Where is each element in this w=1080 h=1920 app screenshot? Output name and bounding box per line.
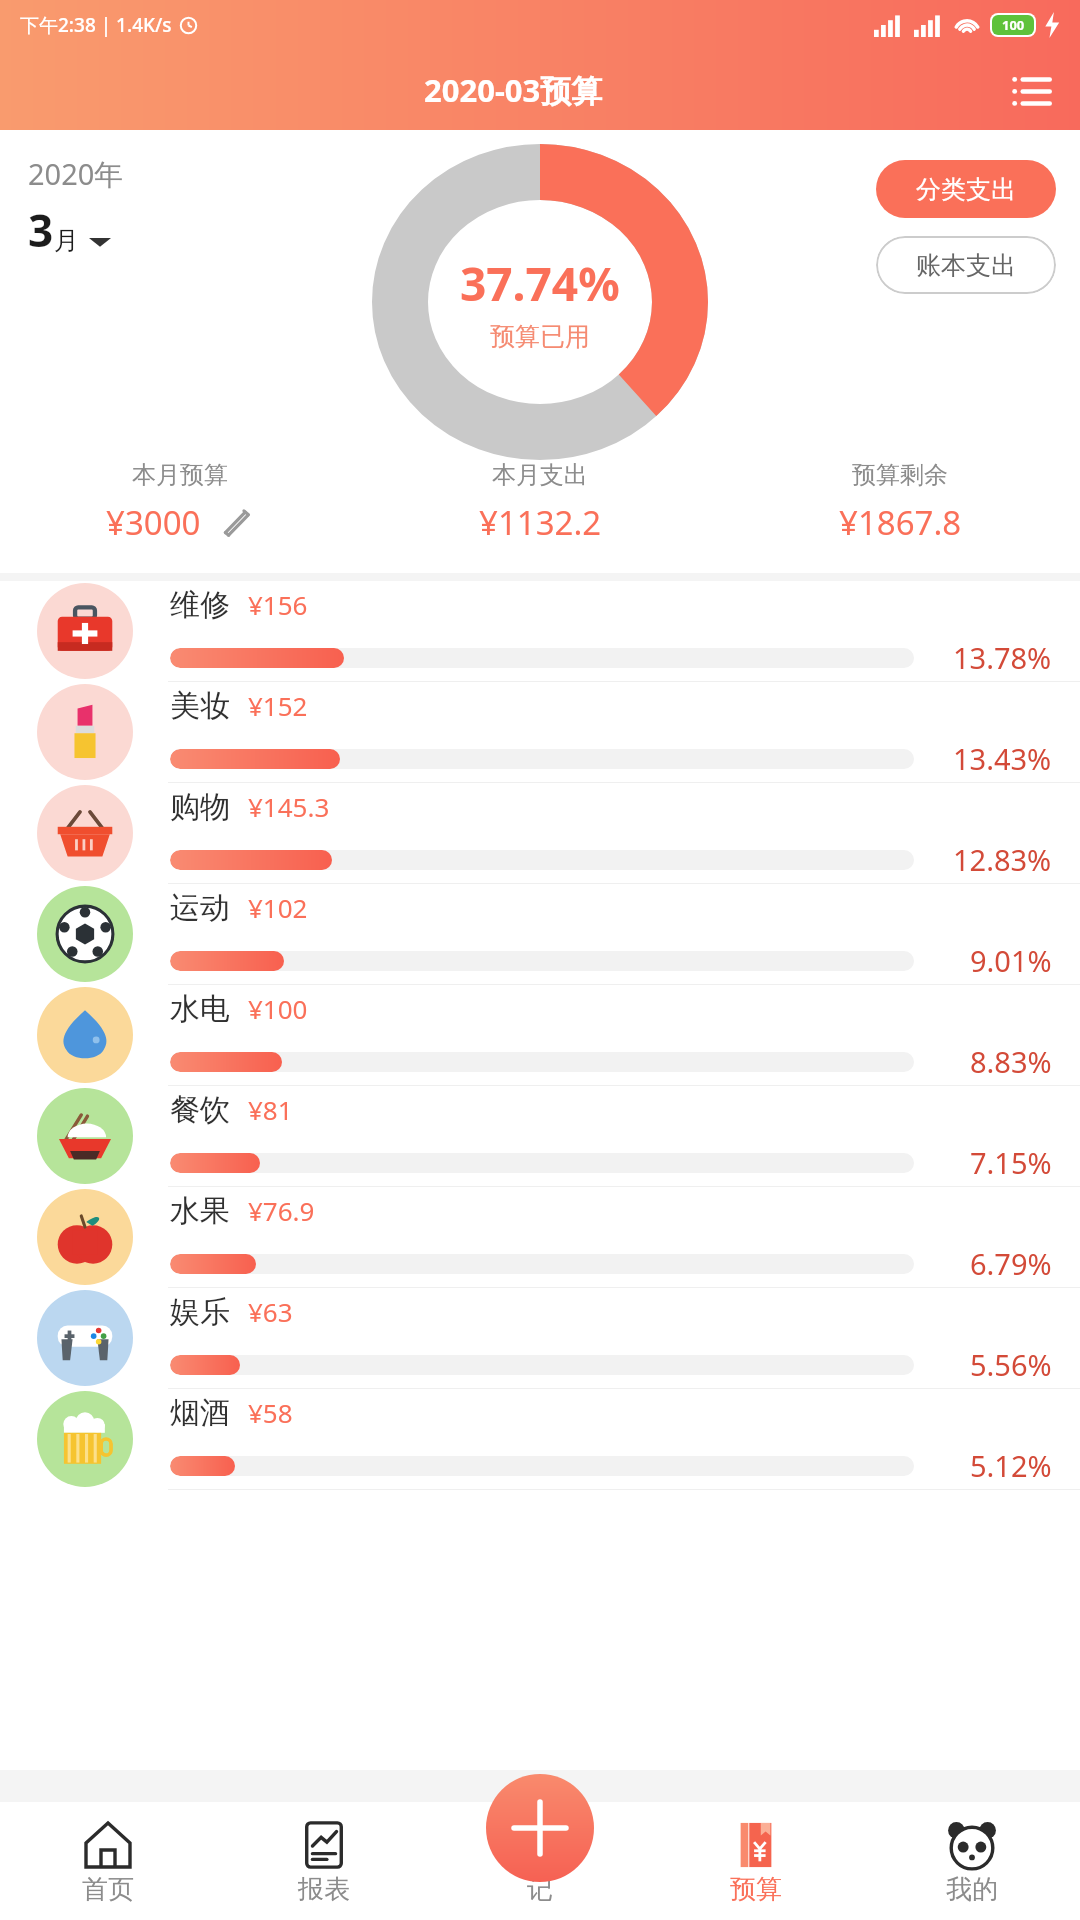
staticText: ¥58 xyxy=(248,1395,293,1430)
button[interactable]: 账本支出 xyxy=(876,236,1056,294)
staticText: 5.12% xyxy=(970,1446,1052,1485)
staticText: ¥3000 xyxy=(106,500,201,545)
button[interactable]: 维修 xyxy=(0,581,1080,682)
staticText: 13.43% xyxy=(953,739,1052,778)
staticText: 预算已用 xyxy=(490,321,590,352)
button[interactable]: 美妆 xyxy=(0,682,1080,783)
staticText: 本月支出 xyxy=(492,460,588,490)
staticText: 娱乐 xyxy=(170,1293,230,1331)
staticText: ¥81 xyxy=(248,1092,293,1127)
staticText: 账本支出 xyxy=(916,250,1016,281)
button[interactable]: 水果 xyxy=(0,1187,1080,1288)
button[interactable]: 分类支出 xyxy=(876,160,1056,218)
button[interactable]: 记一笔 xyxy=(486,1774,594,1882)
button[interactable]: 记 xyxy=(432,1802,648,1920)
staticText: 报表 xyxy=(298,1873,350,1906)
staticText: ¥1867.8 xyxy=(839,500,962,545)
button[interactable]: 我的 xyxy=(864,1802,1080,1920)
staticText: 100 xyxy=(1002,16,1025,34)
staticText: 美妆 xyxy=(170,687,230,725)
staticText: ¥156 xyxy=(248,587,308,622)
button[interactable]: 娱乐 xyxy=(0,1288,1080,1389)
staticText: 下午2:38 | 1.4K/s xyxy=(20,12,172,38)
button[interactable]: 首页 xyxy=(0,1802,216,1920)
button[interactable]: 餐饮 xyxy=(0,1086,1080,1187)
button[interactable]: 编辑预算 xyxy=(215,503,255,543)
staticText: 2020-03预算 xyxy=(424,69,603,111)
staticText: 烟酒 xyxy=(170,1394,230,1432)
staticText: 首页 xyxy=(82,1873,134,1906)
staticText: 8.83% xyxy=(970,1042,1052,1081)
staticText: ¥102 xyxy=(248,890,308,925)
button[interactable]: 运动 xyxy=(0,884,1080,985)
staticText: 37.74% xyxy=(460,252,620,315)
staticText: 预算剩余 xyxy=(852,460,948,490)
button[interactable]: 报表 xyxy=(216,1802,432,1920)
staticText: 7.15% xyxy=(970,1143,1052,1182)
staticText: 9.01% xyxy=(970,941,1052,980)
staticText: 我的 xyxy=(946,1873,998,1906)
staticText: ¥152 xyxy=(248,688,308,723)
staticText: ¥63 xyxy=(248,1294,293,1329)
staticText: 水电 xyxy=(170,990,230,1028)
staticText: 水果 xyxy=(170,1192,230,1230)
staticText: 3 xyxy=(28,200,54,260)
staticText: 预算 xyxy=(730,1873,782,1906)
staticText: 运动 xyxy=(170,889,230,927)
button[interactable]: 预算 xyxy=(648,1802,864,1920)
staticText: ¥145.3 xyxy=(248,789,330,824)
staticText: 维修 xyxy=(170,586,230,624)
staticText: ¥100 xyxy=(248,991,308,1026)
button[interactable]: 菜单 xyxy=(1006,64,1058,116)
staticText: 2020年 xyxy=(28,154,124,194)
staticText: 月 xyxy=(54,225,79,256)
staticText: 13.78% xyxy=(953,638,1052,677)
staticText: ¥76.9 xyxy=(248,1193,315,1228)
staticText: 分类支出 xyxy=(916,174,1016,205)
staticText: 购物 xyxy=(170,788,230,826)
staticText: 记 xyxy=(527,1873,553,1906)
button[interactable]: 烟酒 xyxy=(0,1389,1080,1490)
button[interactable]: 购物 xyxy=(0,783,1080,884)
staticText: 12.83% xyxy=(953,840,1052,879)
staticText: 5.56% xyxy=(970,1345,1052,1384)
staticText: 本月预算 xyxy=(132,460,228,490)
staticText: 餐饮 xyxy=(170,1091,230,1129)
staticText: 6.79% xyxy=(970,1244,1052,1283)
button[interactable]: 3 xyxy=(28,200,111,260)
staticText: ¥1132.2 xyxy=(479,500,602,545)
button[interactable]: 水电 xyxy=(0,985,1080,1086)
